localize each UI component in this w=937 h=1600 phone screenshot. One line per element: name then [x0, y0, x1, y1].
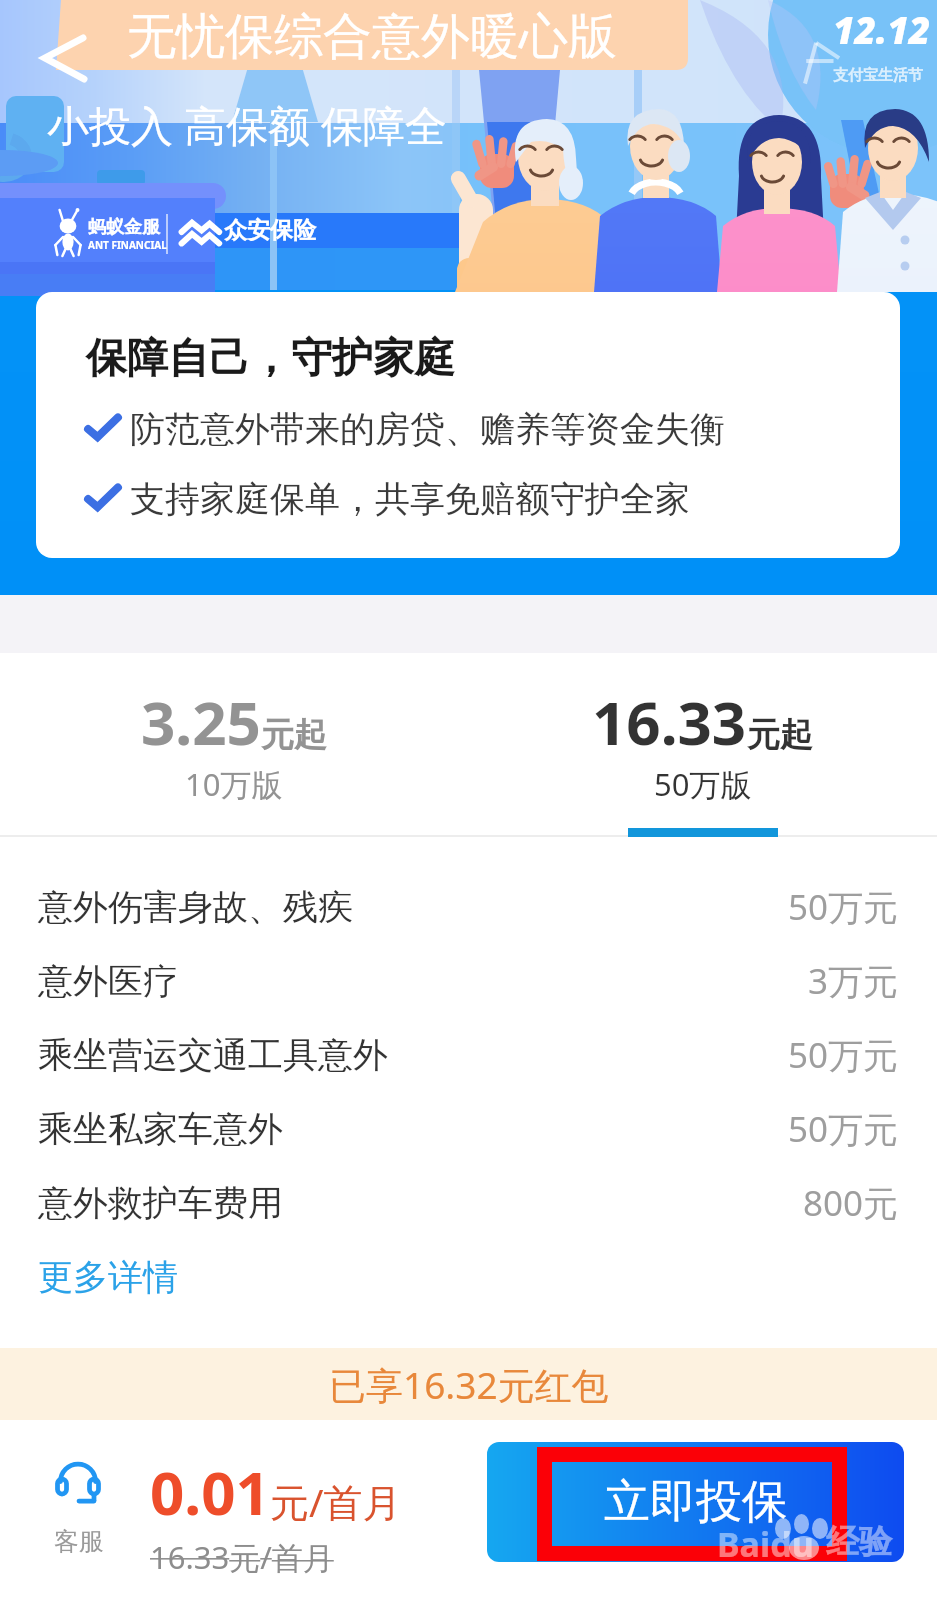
staticText: 经验 — [826, 1521, 892, 1563]
button[interactable]: 客服 — [44, 1458, 114, 1557]
staticText: 已享16.32元红包 — [329, 1359, 609, 1410]
staticText: 10万版 — [185, 763, 283, 805]
staticText: 立即投保 — [604, 1473, 788, 1531]
staticText: 意外伤害身故、残疾 — [38, 885, 353, 929]
button[interactable]: Back — [30, 22, 102, 94]
button[interactable]: 立即投保 — [487, 1442, 904, 1562]
button[interactable]: 16.33 — [468, 653, 937, 837]
staticText: 50万元 — [788, 883, 899, 931]
staticText: 0.01 — [150, 1451, 270, 1533]
other: 客服 — [53, 1458, 105, 1508]
staticText: 元/首月 — [270, 1475, 402, 1528]
staticText: 50万元 — [788, 1105, 899, 1153]
staticText: 意外医疗 — [38, 959, 178, 1003]
staticText: 800元 — [803, 1179, 899, 1227]
staticText: 意外救护车费用 — [38, 1181, 283, 1225]
staticText: 无忧保综合意外暖心版 — [127, 6, 617, 68]
staticText: 16.33 — [592, 681, 747, 763]
button[interactable]: 更多详情 — [38, 1240, 178, 1314]
staticText: ANT FINANCIAL — [88, 238, 167, 252]
staticText: 更多详情 — [38, 1255, 178, 1299]
staticText: jingyan.baidu.com — [720, 1554, 937, 1589]
staticText: 众安保险 — [224, 216, 316, 245]
staticText: 客服 — [54, 1526, 104, 1557]
staticText: 12.12 — [833, 4, 931, 54]
staticText: 乘坐营运交通工具意外 — [38, 1033, 388, 1077]
staticText: 3万元 — [808, 957, 899, 1005]
staticText: 16.33元/首月 — [150, 1536, 334, 1578]
staticText: Baidu — [717, 1521, 814, 1567]
staticText: 支付宝生活节 — [833, 66, 923, 85]
staticText: 小投入 高保额 保障全 — [47, 96, 447, 153]
button[interactable]: 3.25 — [0, 653, 468, 837]
staticText: 支持家庭保单，共享免赔额守护全家 — [130, 477, 690, 521]
staticText: 50万元 — [788, 1031, 899, 1079]
staticText: 元起 — [747, 714, 813, 756]
staticText: 元起 — [261, 714, 327, 756]
staticText: 蚂蚁金服 — [88, 216, 160, 239]
staticText: 3.25 — [141, 681, 261, 763]
staticText: 乘坐私家车意外 — [38, 1107, 283, 1151]
staticText: 保障自己，守护家庭 — [86, 333, 455, 385]
staticText: 防范意外带来的房贷、赡养等资金失衡 — [130, 407, 725, 451]
staticText: 50万版 — [654, 763, 752, 805]
